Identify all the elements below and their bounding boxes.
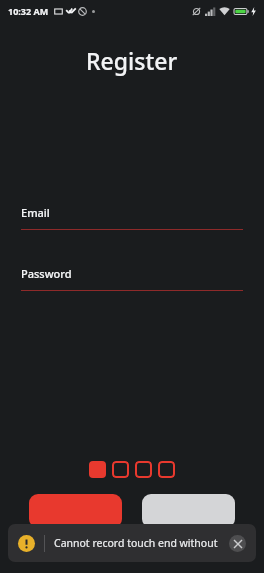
button[interactable]	[29, 494, 122, 528]
button[interactable]: Option 3	[135, 461, 152, 478]
staticText: Cannot record touch end without a touch …	[54, 536, 223, 550]
staticText: Password	[21, 266, 72, 281]
button[interactable]: Option 2	[112, 461, 129, 478]
staticText: Email	[21, 205, 50, 220]
button[interactable]: Password	[21, 266, 243, 291]
button[interactable]: Option 4	[158, 461, 175, 478]
staticText: Register	[86, 45, 178, 76]
button[interactable]: Email	[21, 205, 243, 230]
button[interactable]	[142, 494, 235, 528]
staticText: 10:32 AM	[8, 5, 49, 17]
button[interactable]: Option 1	[89, 461, 106, 478]
button[interactable]: Dismiss	[229, 535, 246, 552]
